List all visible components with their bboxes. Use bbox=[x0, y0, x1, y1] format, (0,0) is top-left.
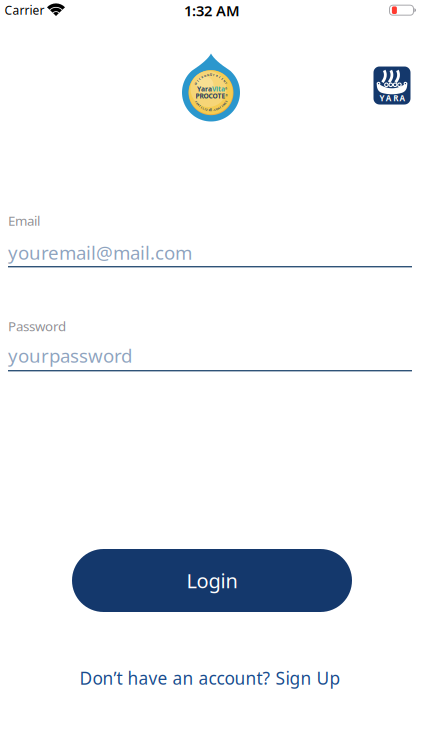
staticText: I bbox=[205, 107, 206, 111]
staticText: C bbox=[199, 77, 201, 81]
staticText: N bbox=[223, 103, 225, 106]
staticText: ® bbox=[225, 94, 227, 97]
staticText: I bbox=[219, 75, 220, 79]
staticText: youremail@mail.com bbox=[8, 240, 192, 265]
staticText: ® bbox=[225, 87, 227, 91]
button[interactable]: Password text field bbox=[8, 341, 412, 371]
button[interactable]: Don’t have an account? Sign Up bbox=[79, 666, 340, 689]
staticText: YARA bbox=[380, 93, 405, 103]
staticText: Don’t have an account? Sign Up bbox=[79, 666, 340, 689]
staticText: F bbox=[195, 100, 196, 103]
staticText: yourpassword bbox=[8, 343, 132, 368]
staticText: Password bbox=[8, 317, 66, 335]
staticText: Login bbox=[186, 567, 237, 594]
staticText: I bbox=[197, 79, 198, 83]
staticText: N bbox=[223, 79, 225, 83]
staticText: PROCOTE bbox=[195, 91, 225, 100]
staticText: T bbox=[219, 105, 221, 109]
staticText: T bbox=[213, 73, 215, 77]
staticText: Yara bbox=[197, 85, 212, 93]
staticText: G bbox=[224, 101, 226, 105]
staticText: T bbox=[225, 82, 227, 85]
staticText: E bbox=[196, 101, 197, 105]
staticText: U bbox=[210, 73, 212, 77]
staticText: R bbox=[210, 108, 212, 112]
staticText: R bbox=[201, 75, 203, 79]
staticText: E bbox=[222, 77, 223, 81]
staticText: S bbox=[226, 100, 227, 103]
staticText: Z bbox=[206, 108, 208, 111]
staticText: Carrier bbox=[4, 2, 44, 18]
staticText: A bbox=[218, 106, 220, 110]
staticText: 1:32 AM bbox=[184, 1, 240, 20]
button[interactable]: Email text field bbox=[8, 238, 412, 267]
staticText: R bbox=[216, 74, 218, 78]
button[interactable]: Login bbox=[72, 549, 352, 612]
staticText: R bbox=[197, 103, 199, 106]
staticText: T bbox=[199, 104, 201, 108]
staticText: L bbox=[203, 106, 204, 110]
staticText: I bbox=[201, 105, 202, 109]
staticText: O bbox=[204, 74, 206, 78]
staticText: Vita bbox=[212, 85, 225, 93]
staticText: E bbox=[208, 108, 209, 112]
staticText: - bbox=[212, 108, 213, 112]
staticText: O bbox=[216, 107, 218, 111]
staticText: C bbox=[214, 108, 216, 111]
staticText: I bbox=[222, 104, 223, 108]
staticText: Email bbox=[8, 212, 40, 229]
staticText: M bbox=[194, 82, 197, 85]
staticText: N bbox=[207, 73, 209, 77]
